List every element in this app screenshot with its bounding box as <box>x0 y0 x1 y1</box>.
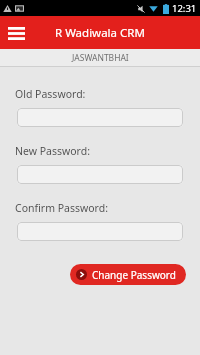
staticText: Confirm Password: <box>15 201 108 215</box>
button[interactable] <box>17 165 183 184</box>
staticText: Old Password: <box>15 87 86 101</box>
button[interactable] <box>17 108 183 127</box>
staticText: JASWANTBHAI <box>72 52 129 64</box>
button[interactable] <box>17 222 183 241</box>
button[interactable]: Open navigation menu <box>5 22 27 44</box>
button[interactable]: Change Password <box>70 264 186 285</box>
staticText: 12:31 <box>172 2 197 15</box>
staticText: R Wadiwala CRM <box>55 25 145 41</box>
staticText: New Password: <box>15 144 90 158</box>
staticText: Change Password <box>92 268 176 282</box>
